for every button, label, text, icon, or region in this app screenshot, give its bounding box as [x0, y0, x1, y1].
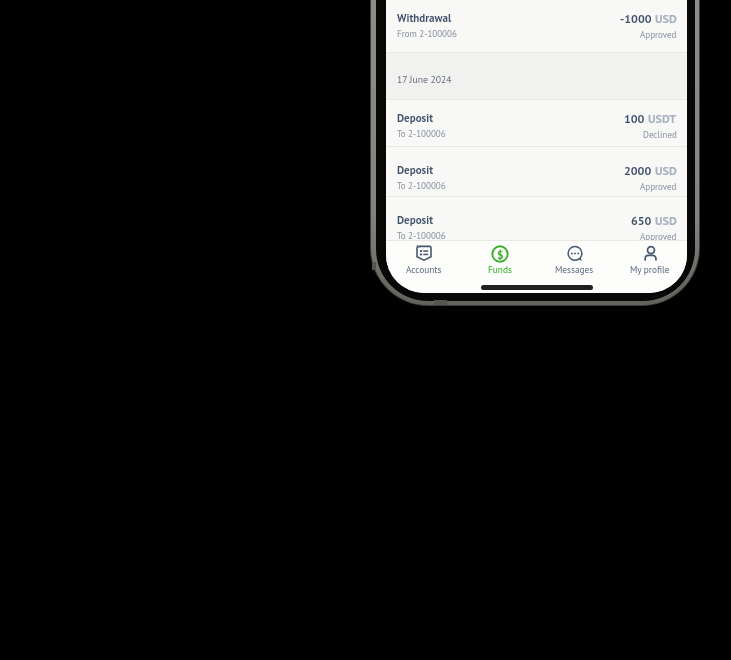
staticText: Messages: [555, 264, 594, 276]
staticText: 2000: [624, 163, 652, 179]
button[interactable]: Withdrawal: [386, 0, 687, 52]
staticText: USD: [652, 213, 677, 229]
staticText: To 2-100006: [397, 180, 446, 192]
staticText: Deposit: [397, 213, 433, 227]
staticText: 650: [631, 213, 652, 229]
staticText: Approved: [640, 181, 677, 193]
staticText: Withdrawal: [397, 11, 452, 25]
staticText: -1000: [620, 11, 652, 27]
button[interactable]: Deposit: [386, 100, 687, 146]
staticText: Approved: [640, 231, 677, 243]
staticText: To 2-100006: [397, 128, 446, 140]
button[interactable]: Messages: [537, 241, 612, 293]
button[interactable]: My profile: [612, 241, 687, 293]
staticText: Accounts: [406, 264, 442, 276]
button[interactable]: Accounts: [386, 241, 462, 293]
staticText: To 2-100006: [397, 230, 446, 242]
staticText: USDT: [645, 111, 677, 127]
button[interactable]: $: [462, 241, 537, 293]
staticText: 100: [624, 111, 645, 127]
staticText: My profile: [630, 264, 670, 276]
staticText: Declined: [643, 129, 677, 141]
staticText: Approved: [640, 29, 677, 41]
staticText: USD: [652, 163, 677, 179]
staticText: USD: [652, 11, 677, 27]
staticText: Funds: [488, 264, 512, 276]
button[interactable]: Deposit: [386, 197, 687, 257]
staticText: From 2-100006: [397, 28, 457, 40]
staticText: $: [497, 247, 504, 262]
button[interactable]: Deposit: [386, 147, 687, 196]
staticText: Deposit: [397, 163, 433, 177]
staticText: 17 June 2024: [397, 73, 452, 86]
staticText: Deposit: [397, 111, 433, 125]
